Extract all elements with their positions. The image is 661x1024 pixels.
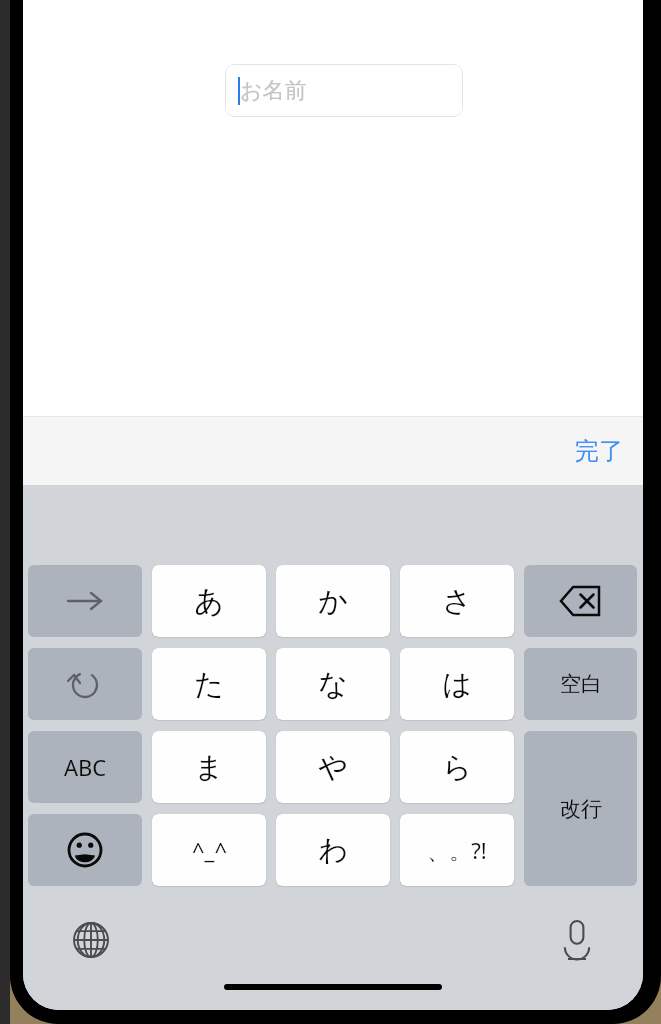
staticText: 空白	[560, 671, 602, 697]
button[interactable]: ^_^	[152, 814, 266, 886]
button[interactable]: Emoji	[28, 814, 142, 886]
staticText: ら	[442, 749, 472, 786]
button[interactable]: お名前	[225, 64, 463, 117]
button[interactable]: か	[276, 565, 390, 637]
button[interactable]: は	[400, 648, 514, 720]
button[interactable]: な	[276, 648, 390, 720]
button[interactable]: さ	[400, 565, 514, 637]
button[interactable]: 完了	[567, 428, 631, 474]
button[interactable]: Dictation	[553, 912, 601, 970]
staticText: ま	[194, 749, 224, 786]
staticText: ^_^	[192, 835, 227, 865]
button[interactable]: 空白	[524, 648, 637, 720]
button[interactable]: や	[276, 731, 390, 803]
staticText: 完了	[575, 436, 623, 466]
staticText: あ	[194, 583, 224, 620]
button[interactable]: ら	[400, 731, 514, 803]
staticText: な	[318, 666, 348, 703]
staticText: は	[442, 666, 472, 703]
staticText: か	[318, 583, 348, 620]
button[interactable]: Change keyboard	[65, 914, 117, 966]
staticText: や	[318, 749, 348, 786]
staticText: お名前	[240, 77, 307, 105]
staticText: さ	[442, 583, 472, 620]
staticText: ABC	[64, 752, 107, 782]
button[interactable]: Undo	[28, 648, 142, 720]
staticText: た	[194, 666, 224, 703]
button[interactable]: Delete	[524, 565, 637, 637]
staticText: 、。?!	[427, 835, 487, 865]
button[interactable]: ABC	[28, 731, 142, 803]
button[interactable]: わ	[276, 814, 390, 886]
button[interactable]: た	[152, 648, 266, 720]
button[interactable]: 改行	[524, 731, 637, 886]
button[interactable]: 、。?!	[400, 814, 514, 886]
button[interactable]: あ	[152, 565, 266, 637]
button[interactable]: Next candidate	[28, 565, 142, 637]
staticText: 改行	[560, 796, 602, 822]
staticText: わ	[318, 832, 348, 869]
button[interactable]: ま	[152, 731, 266, 803]
